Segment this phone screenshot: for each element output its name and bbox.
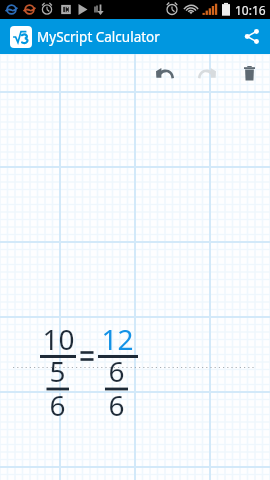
staticText: 12 — [101, 320, 134, 358]
button[interactable]: Undo — [148, 56, 182, 90]
staticText: MyScript Calculator — [37, 28, 160, 46]
staticText: 10:16 — [235, 2, 266, 18]
staticText: 6 — [49, 386, 66, 424]
staticText: 10 — [42, 320, 75, 358]
staticText: 6 — [108, 386, 125, 424]
button[interactable]: Redo — [190, 56, 224, 90]
staticText: 5 — [49, 352, 66, 390]
button[interactable]: Share — [233, 19, 270, 54]
staticText: 6 — [108, 352, 125, 390]
button[interactable]: Delete — [232, 56, 266, 90]
